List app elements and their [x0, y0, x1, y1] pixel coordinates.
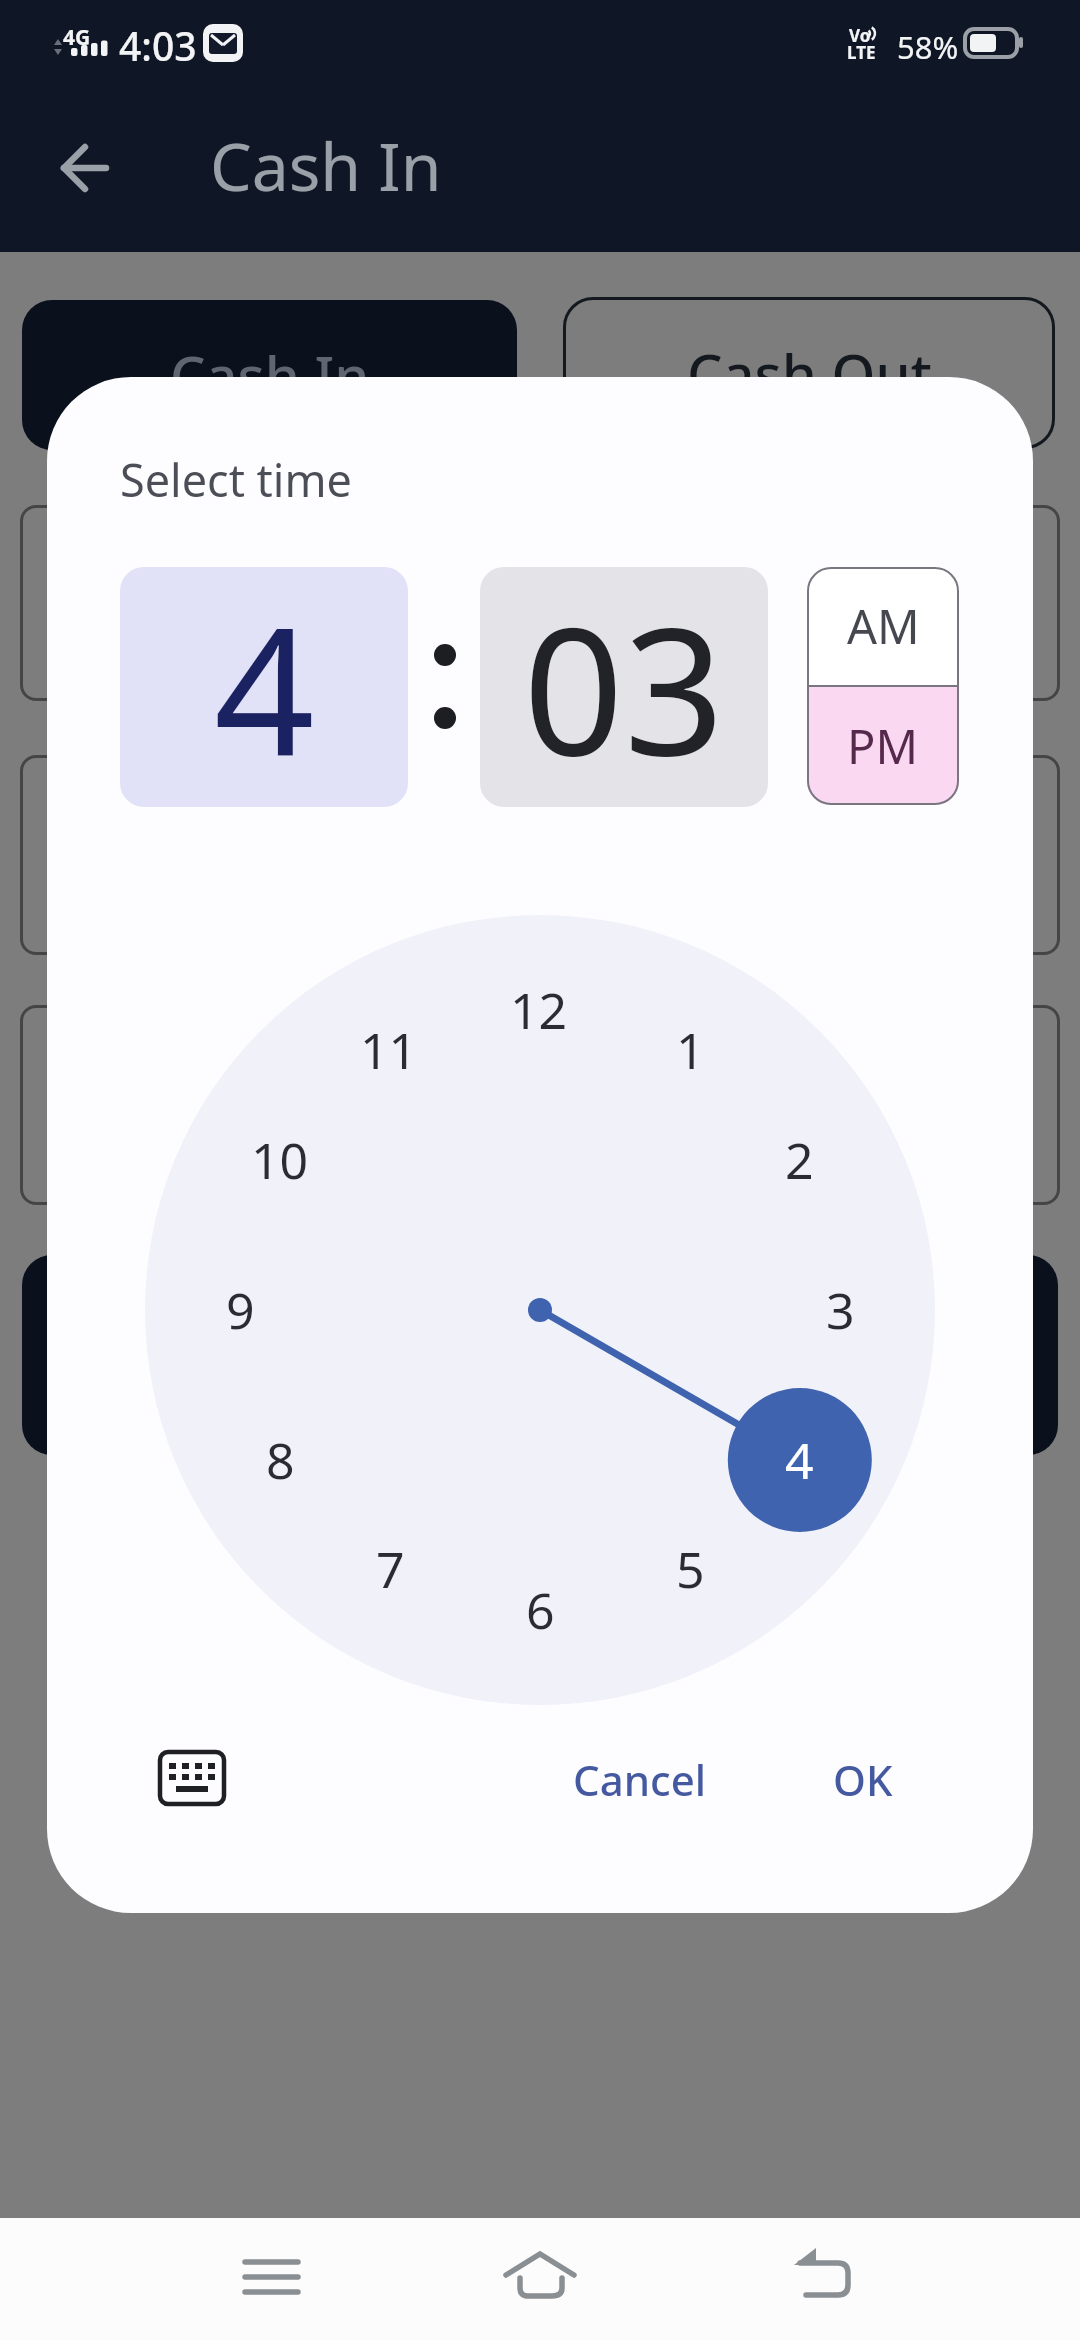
- staticText: Vo: [849, 24, 871, 47]
- staticText: 5: [676, 1535, 705, 1603]
- staticText: Cash Out: [687, 335, 932, 411]
- staticText: Cash In: [210, 120, 442, 210]
- staticText: Cancel: [573, 1751, 707, 1808]
- staticText: 4: [214, 567, 315, 807]
- staticText: 10: [251, 1126, 309, 1194]
- staticText: 4G: [63, 23, 91, 52]
- staticText: Select time: [120, 449, 352, 510]
- staticText: LTE: [847, 41, 876, 64]
- staticText: 4: [785, 1426, 814, 1494]
- staticText: 1: [676, 1016, 705, 1084]
- button[interactable]: OK: [783, 1739, 943, 1819]
- button[interactable]: 03: [480, 567, 768, 807]
- button[interactable]: [22, 1255, 1058, 1455]
- staticText: 58%: [897, 26, 959, 68]
- staticText: 2: [785, 1126, 814, 1194]
- button[interactable]: [782, 2246, 866, 2312]
- button[interactable]: AM: [807, 567, 959, 685]
- staticText: PM: [847, 714, 919, 778]
- button[interactable]: [230, 2246, 314, 2312]
- button[interactable]: 4: [120, 567, 408, 807]
- button[interactable]: Cancel: [510, 1739, 770, 1819]
- staticText: 8: [266, 1426, 295, 1494]
- staticText: 9: [226, 1276, 255, 1344]
- staticText: Cash In: [170, 337, 370, 413]
- staticText: 7: [376, 1535, 405, 1603]
- staticText: 03: [523, 567, 725, 807]
- button[interactable]: PM: [807, 687, 959, 805]
- button[interactable]: Cash In: [22, 300, 517, 450]
- button[interactable]: [160, 1752, 224, 1806]
- button[interactable]: Cash Out: [563, 297, 1055, 449]
- staticText: AM: [847, 594, 920, 658]
- button[interactable]: [498, 2246, 582, 2312]
- staticText: 4:03: [119, 19, 197, 72]
- staticText: 12: [510, 976, 568, 1044]
- staticText: 11: [360, 1016, 418, 1084]
- button[interactable]: [40, 132, 130, 204]
- staticText: 3: [826, 1276, 855, 1344]
- staticText: OK: [833, 1751, 893, 1808]
- staticText: 6: [526, 1576, 555, 1644]
